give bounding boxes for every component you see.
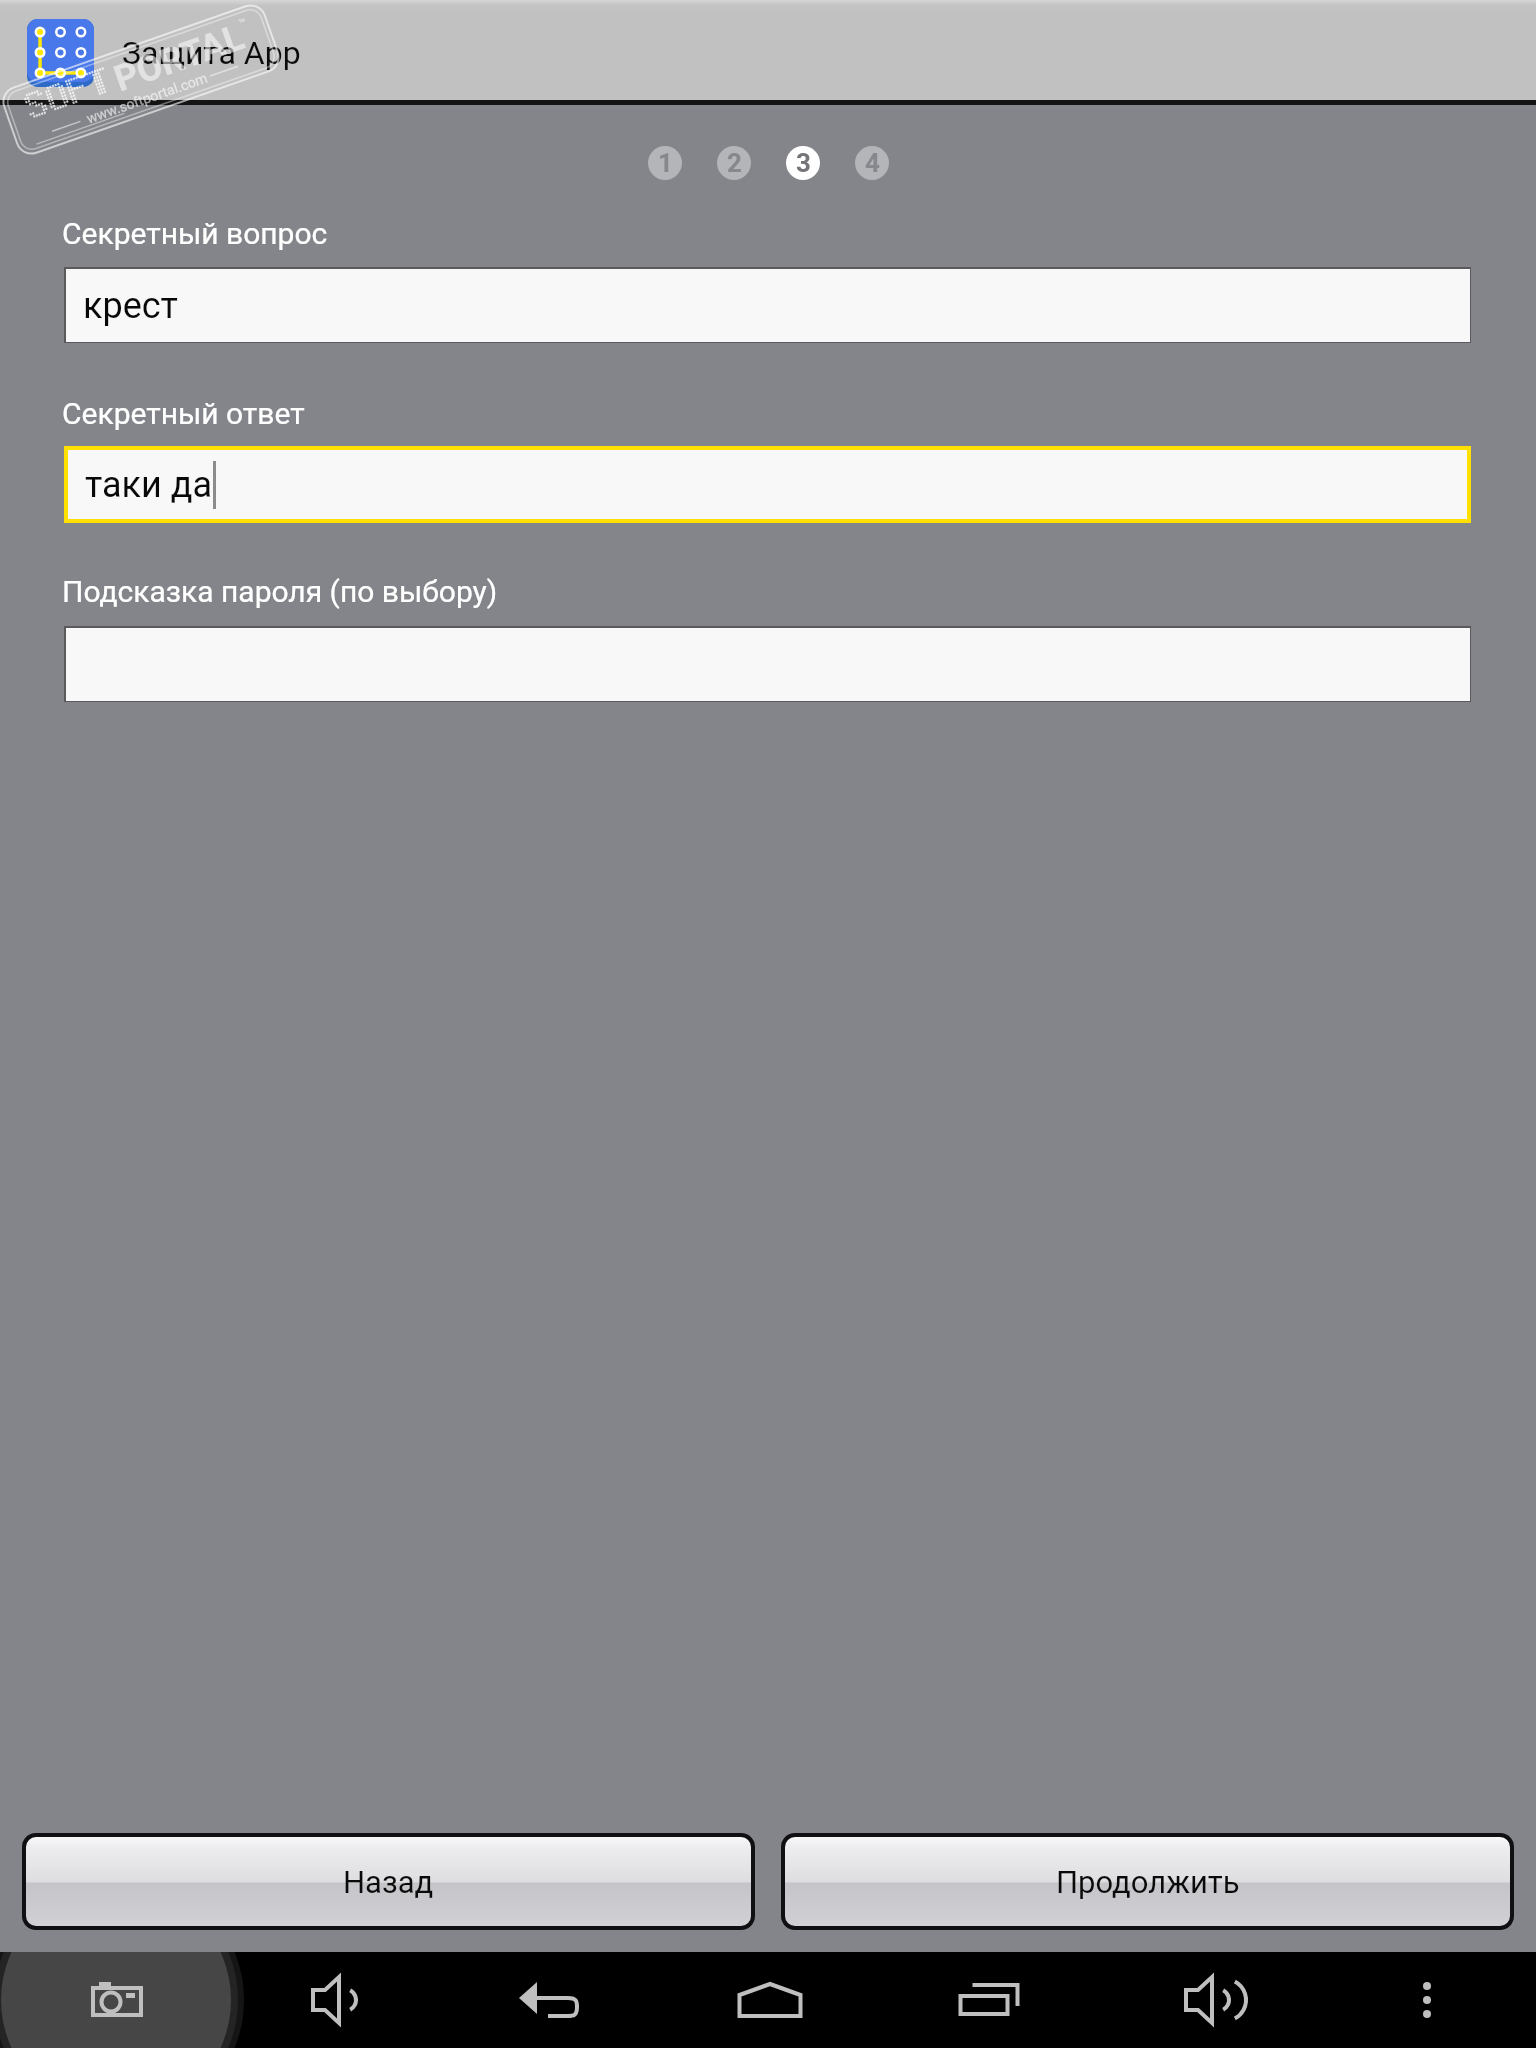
button[interactable]: Screenshot — [0, 1952, 220, 2048]
staticText: Секретный ответ — [62, 396, 305, 431]
button[interactable]: Назад — [26, 1837, 751, 1926]
staticText: ™ — [237, 15, 249, 31]
staticText: 1 — [658, 148, 673, 178]
button[interactable]: Продолжить — [785, 1837, 1510, 1926]
staticText: Подсказка пароля (по выбору) — [62, 574, 498, 609]
staticText: 3 — [796, 148, 811, 178]
staticText: таки да — [85, 464, 213, 506]
button[interactable]: Recent apps — [879, 1952, 1098, 2048]
staticText: www.softportal.com — [84, 69, 210, 127]
button[interactable]: Volume down — [220, 1952, 440, 2048]
staticText: PORTAL — [109, 16, 250, 100]
staticText: Защита App — [122, 34, 301, 72]
button[interactable]: крест — [66, 269, 1470, 342]
button[interactable]: Back — [440, 1952, 660, 2048]
button[interactable]: 3 — [786, 146, 820, 180]
staticText: 4 — [865, 148, 880, 178]
staticText: Назад — [343, 1864, 434, 1900]
button[interactable]: 1 — [648, 146, 682, 180]
button[interactable]: таки да — [68, 450, 1467, 519]
staticText: 2 — [727, 148, 742, 178]
button[interactable]: Защита App — [0, 0, 330, 100]
button[interactable]: Home — [660, 1952, 879, 2048]
button[interactable]: More options — [1317, 1952, 1536, 2048]
button[interactable]: 2 — [717, 146, 751, 180]
button[interactable]: 4 — [855, 146, 889, 180]
staticText: Продолжить — [1056, 1864, 1240, 1900]
staticText: крест — [83, 285, 178, 327]
staticText: Секретный вопрос — [62, 216, 328, 251]
button[interactable]: Volume up — [1098, 1952, 1317, 2048]
